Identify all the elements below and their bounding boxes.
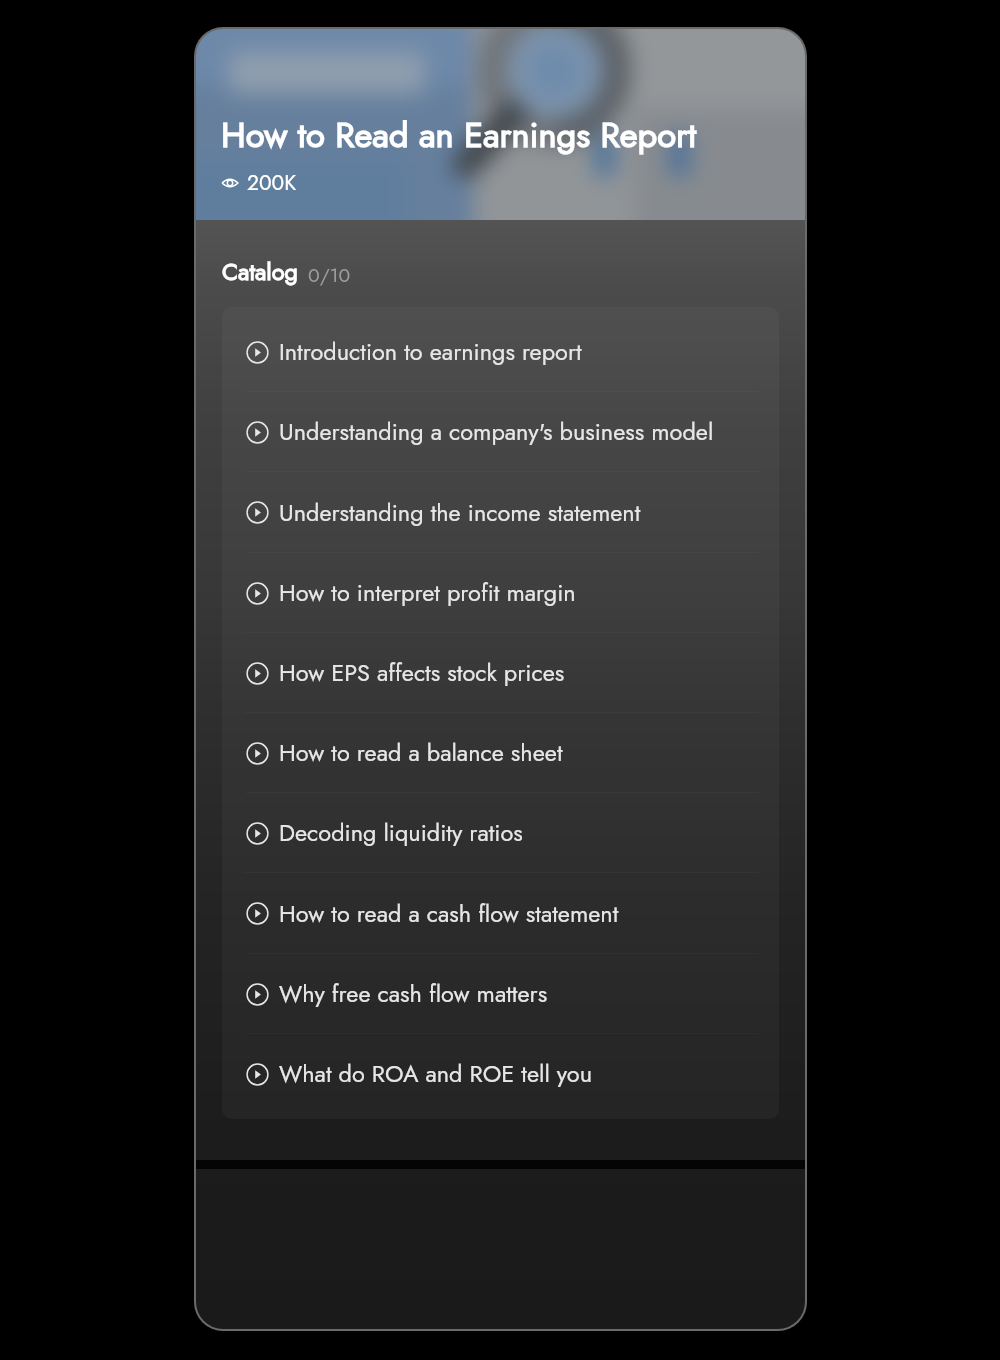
staticText: How to Read an Earnings Report [221,110,697,160]
staticText: How to interpret profit margin [279,576,576,610]
button[interactable]: Introduction to earnings report [222,312,779,392]
button[interactable]: How EPS affects stock prices [222,633,779,713]
staticText: What do ROA and ROE tell you [279,1057,592,1091]
staticText: Introduction to earnings report [279,335,582,369]
button[interactable]: How to read a cash flow statement [222,873,779,954]
other: Views [221,174,239,192]
staticText: 0/10 [308,261,351,289]
button[interactable]: Why free cash flow matters [222,954,779,1034]
button[interactable]: What do ROA and ROE tell you [222,1034,779,1114]
staticText: Catalog [222,255,298,289]
staticText: How to read a balance sheet [279,736,563,770]
button[interactable]: Understanding the income statement [222,472,779,553]
staticText: How to read a cash flow statement [279,897,619,931]
button[interactable]: Decoding liquidity ratios [222,793,779,873]
button[interactable]: Understanding a company's business model [222,392,779,472]
button[interactable]: How to interpret profit margin [222,553,779,633]
staticText: How EPS affects stock prices [279,656,565,690]
button[interactable]: How to read a balance sheet [222,713,779,793]
staticText: Why free cash flow matters [279,977,548,1011]
staticText: Understanding a company's business model [279,415,714,449]
staticText: Understanding the income statement [279,496,641,530]
staticText: Decoding liquidity ratios [279,816,523,850]
staticText: 200K [247,168,297,198]
